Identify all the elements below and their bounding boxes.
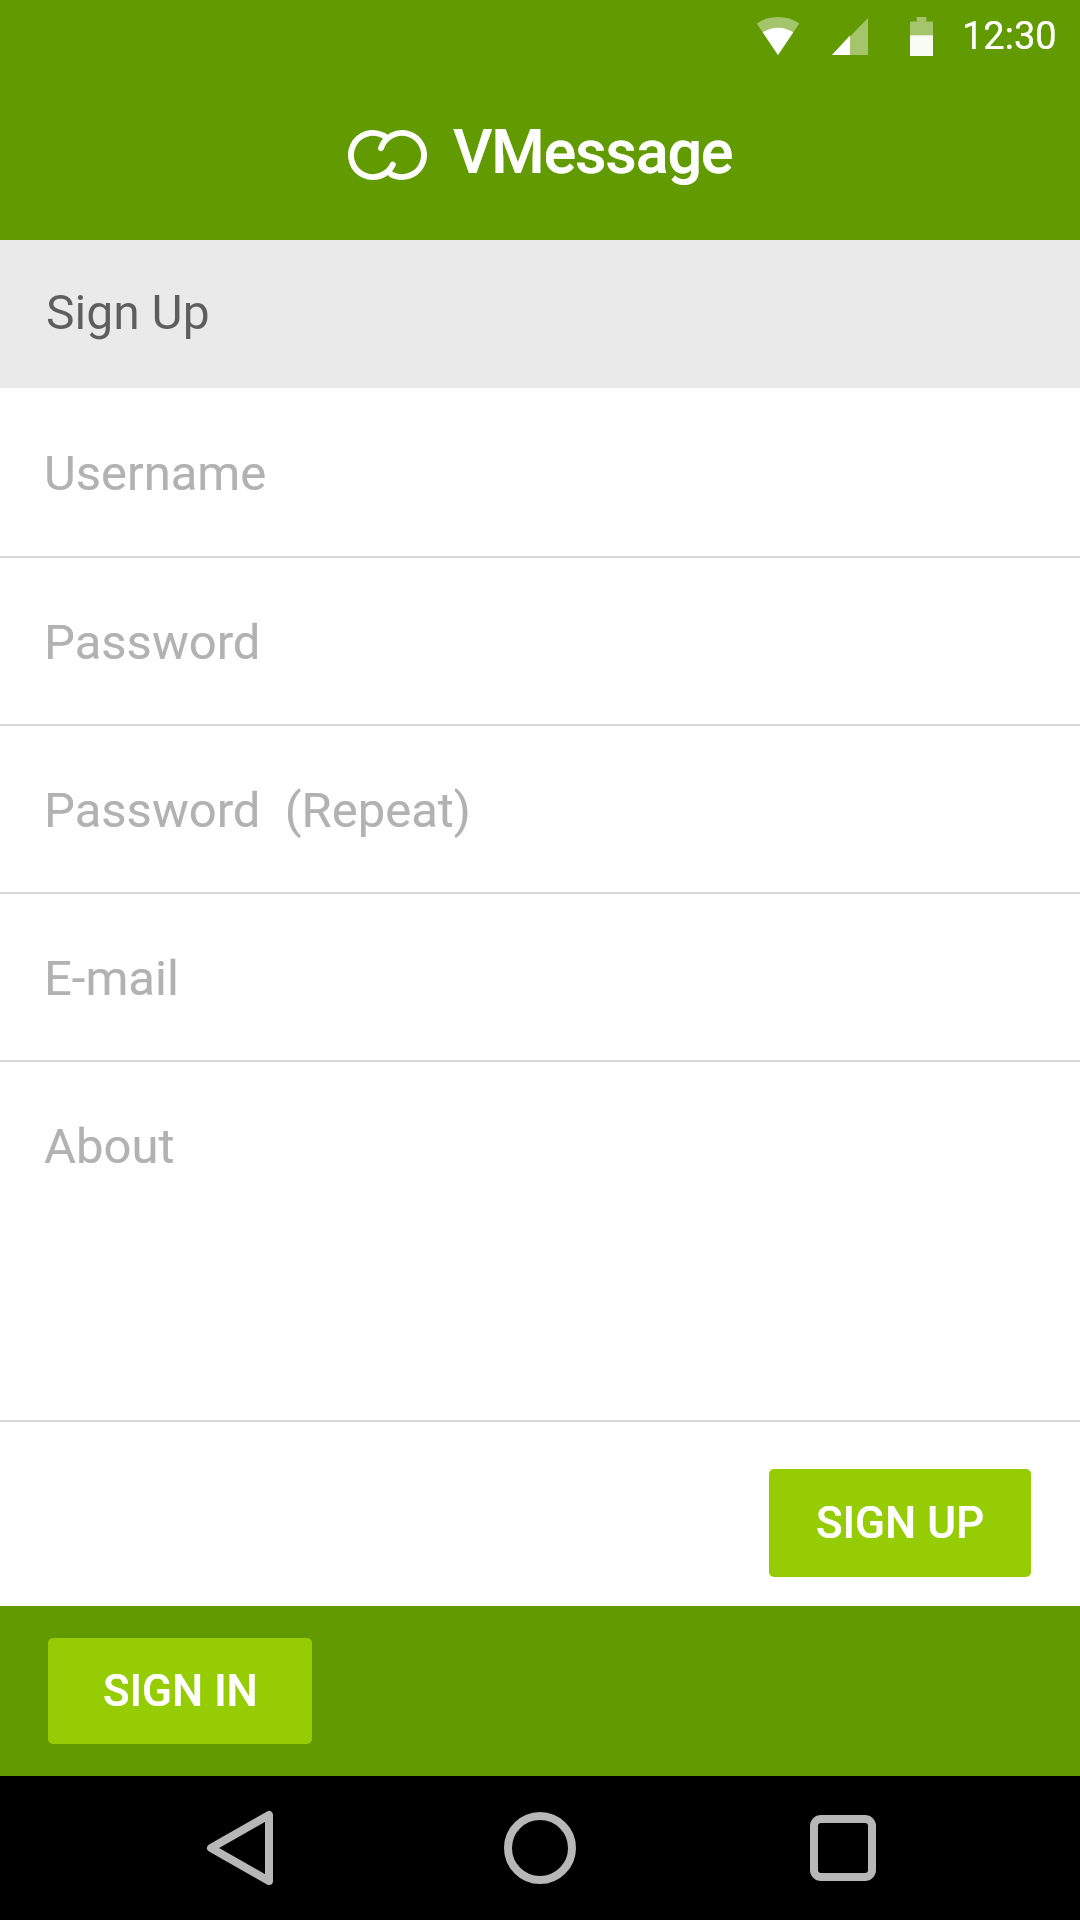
other: VMessage logo	[348, 130, 427, 180]
button[interactable]: SIGN IN	[48, 1638, 312, 1744]
button[interactable]: Sign Up	[0, 240, 1080, 388]
button[interactable]: Username	[0, 388, 1080, 556]
button[interactable]: Recents	[690, 1776, 990, 1920]
button[interactable]: Password	[0, 558, 1080, 724]
button[interactable]: Password (Repeat)	[0, 726, 1080, 892]
staticText: SIGN IN	[103, 1665, 258, 1717]
button[interactable]: About	[0, 1062, 1080, 1420]
staticText: Password (Repeat)	[44, 782, 471, 839]
staticText: Password	[44, 614, 261, 671]
staticText: Username	[44, 445, 267, 502]
button[interactable]: E-mail	[0, 894, 1080, 1060]
staticText: 12:30	[962, 14, 1057, 59]
button[interactable]: Home	[390, 1776, 690, 1920]
staticText: VMessage	[453, 116, 733, 187]
staticText: SIGN UP	[816, 1497, 985, 1549]
staticText: E-mail	[44, 950, 179, 1007]
staticText: About	[44, 1118, 175, 1175]
button[interactable]: SIGN UP	[769, 1469, 1031, 1577]
staticText: Sign Up	[46, 284, 210, 340]
button[interactable]: Back	[90, 1776, 390, 1920]
